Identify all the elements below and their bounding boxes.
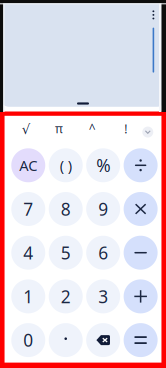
button[interactable]: ^ [76, 118, 109, 146]
staticText: ! [124, 121, 127, 137]
staticText: AC [19, 156, 37, 175]
staticText: 7 [23, 197, 33, 220]
button[interactable]: Collapse [142, 126, 153, 137]
button[interactable]: 5 [49, 236, 83, 270]
button[interactable]: Equals [124, 323, 158, 357]
staticText: π [55, 121, 63, 137]
button[interactable]: 4 [11, 236, 45, 270]
staticText: √ [22, 122, 30, 137]
button[interactable]: √ [9, 118, 42, 146]
button[interactable]: % [86, 148, 120, 182]
staticText: 5 [61, 241, 71, 264]
button[interactable]: More options [146, 7, 160, 23]
staticText: % [96, 154, 110, 177]
button[interactable]: 6 [86, 236, 120, 270]
button[interactable]: ! [109, 118, 142, 146]
button[interactable]: Multiply [124, 192, 158, 226]
staticText: 0 [23, 329, 33, 352]
button[interactable]: Plus [124, 279, 158, 313]
button[interactable]: Decimal point [49, 323, 83, 357]
button[interactable]: 0 [11, 323, 45, 357]
button[interactable]: ( ) [49, 148, 83, 182]
button[interactable]: 8 [49, 192, 83, 226]
button[interactable]: 2 [49, 279, 83, 313]
button[interactable]: π [42, 118, 76, 146]
staticText: 1 [23, 285, 33, 308]
button[interactable]: 3 [86, 279, 120, 313]
button[interactable]: Minus [124, 236, 158, 270]
button[interactable]: 1 [11, 279, 45, 313]
staticText: 2 [61, 285, 71, 308]
staticText: 6 [98, 241, 108, 264]
staticText: 8 [61, 197, 71, 220]
button[interactable]: Divide [124, 148, 158, 182]
button[interactable]: Delete [86, 323, 120, 357]
staticText: 9 [98, 197, 108, 220]
staticText: 3 [98, 285, 108, 308]
button[interactable]: AC [11, 148, 45, 182]
button[interactable]: 9 [86, 192, 120, 226]
button[interactable]: 7 [11, 192, 45, 226]
staticText: ^ [89, 120, 96, 136]
staticText: 4 [23, 241, 33, 264]
staticText: ( ) [60, 156, 72, 175]
